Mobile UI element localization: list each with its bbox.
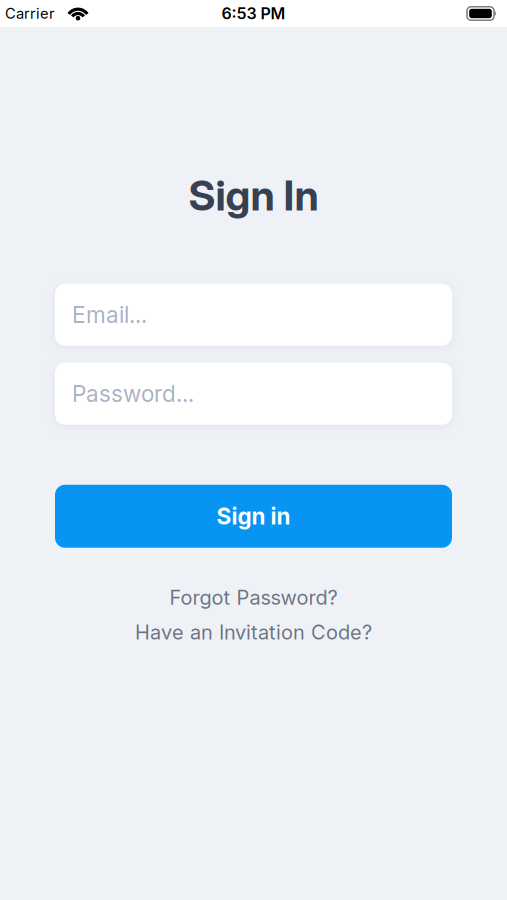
staticText: Carrier bbox=[5, 5, 55, 22]
staticText: Forgot Password? bbox=[169, 586, 337, 609]
button[interactable]: Forgot Password? bbox=[169, 586, 337, 609]
button[interactable]: Email... bbox=[55, 284, 452, 346]
staticText: Password... bbox=[72, 380, 194, 407]
button[interactable]: Sign in bbox=[55, 485, 452, 548]
staticText: Sign In bbox=[188, 171, 318, 220]
staticText: Have an Invitation Code? bbox=[135, 620, 372, 644]
staticText: Email... bbox=[72, 301, 147, 328]
staticText: Sign in bbox=[216, 503, 290, 530]
button[interactable]: Password... bbox=[55, 363, 452, 425]
staticText: 6:53 PM bbox=[221, 4, 285, 23]
button[interactable]: Have an Invitation Code? bbox=[135, 620, 372, 644]
